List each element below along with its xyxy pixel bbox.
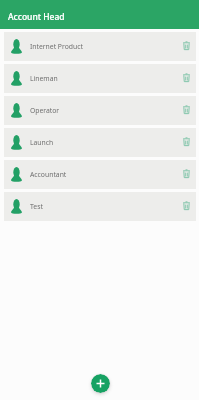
button[interactable]: Delete (177, 70, 195, 88)
button[interactable]: Delete (177, 198, 195, 216)
button[interactable]: Lineman (4, 64, 196, 93)
button[interactable]: Add (91, 374, 110, 393)
button[interactable]: Launch (4, 128, 196, 157)
button[interactable]: Accountant (4, 160, 196, 189)
button[interactable]: Test (4, 192, 196, 221)
button[interactable]: Delete (177, 166, 195, 184)
staticText: Test (30, 202, 43, 211)
button[interactable]: Internet Product (4, 32, 196, 61)
staticText: Launch (30, 138, 54, 147)
staticText: Operator (30, 106, 60, 115)
staticText: Lineman (30, 74, 58, 83)
staticText: Internet Product (30, 42, 83, 51)
staticText: Accountant (30, 170, 67, 179)
button[interactable]: Delete (177, 134, 195, 152)
button[interactable]: Operator (4, 96, 196, 125)
button[interactable]: Delete (177, 38, 195, 56)
button[interactable]: Delete (177, 102, 195, 120)
staticText: Account Head (8, 11, 65, 23)
